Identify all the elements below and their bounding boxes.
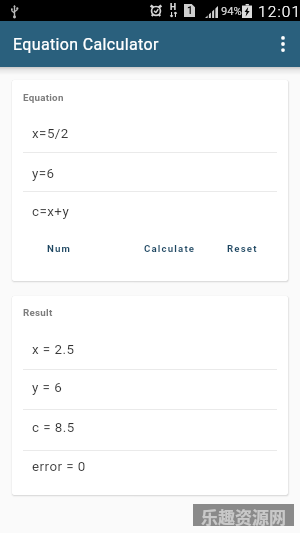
button[interactable] (12, 369, 288, 409)
staticText: 乐趣资源网 (201, 504, 286, 526)
button[interactable]: Calculate (144, 240, 196, 257)
staticText: Equation (23, 92, 64, 103)
button[interactable] (12, 152, 288, 191)
staticText: Num (47, 243, 72, 254)
button[interactable]: Num (47, 240, 72, 257)
staticText: Reset (227, 243, 258, 254)
staticText: y = 6 (32, 380, 63, 396)
staticText: Result (23, 307, 53, 318)
staticText: H (170, 2, 177, 12)
button[interactable]: Reset (227, 240, 258, 257)
button[interactable] (12, 409, 288, 450)
staticText: Calculate (144, 243, 196, 254)
staticText: error = 0 (32, 459, 86, 475)
staticText: c = 8.5 (32, 420, 75, 436)
staticText: y=6 (32, 166, 55, 182)
staticText: 1 (187, 5, 193, 17)
staticText: 12:01 (258, 3, 300, 21)
button[interactable] (12, 326, 288, 369)
staticText: x = 2.5 (32, 342, 75, 358)
staticText: x=5/2 (32, 126, 69, 142)
staticText: c=x+y (32, 204, 70, 220)
button[interactable]: More options (266, 21, 300, 67)
staticText: Equation Calculator (13, 35, 159, 54)
staticText: 94% (221, 5, 242, 18)
button[interactable] (12, 450, 288, 495)
button[interactable] (12, 191, 288, 230)
button[interactable] (12, 113, 288, 152)
